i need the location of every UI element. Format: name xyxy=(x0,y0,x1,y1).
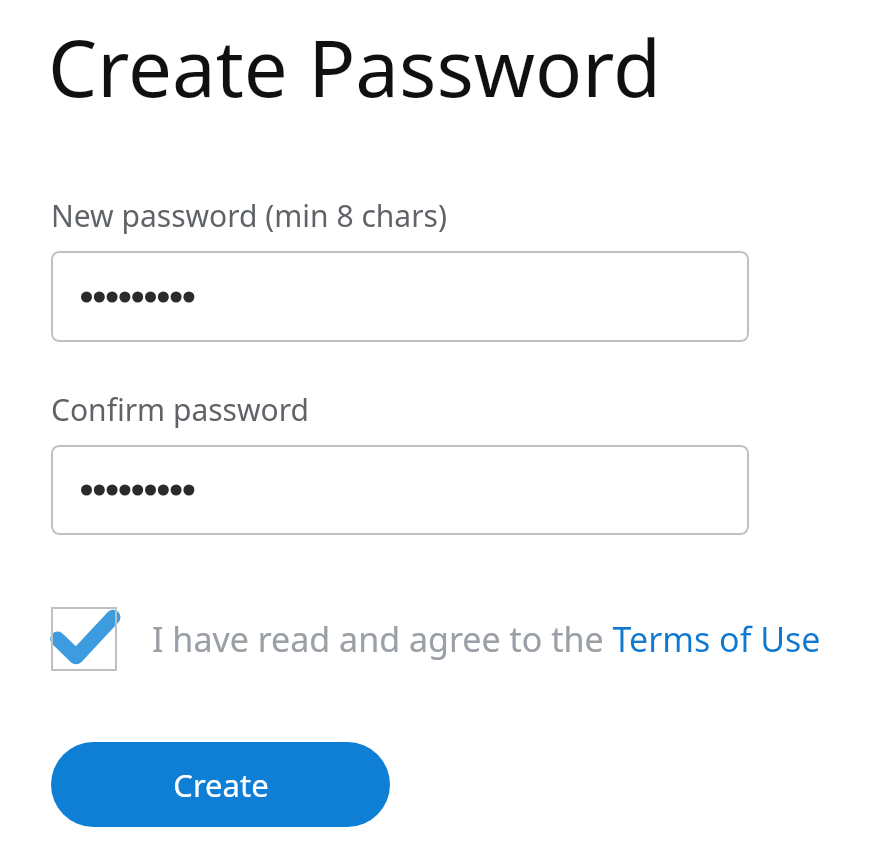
button[interactable]: New password (min 8 chars) xyxy=(51,251,749,342)
staticText: New password (min 8 chars) xyxy=(51,195,447,236)
staticText: Confirm password xyxy=(51,389,309,430)
other: Agree to Terms of Use checkbox xyxy=(51,607,117,671)
staticText: Create Password xyxy=(48,14,661,120)
staticText: I have read and agree to the Terms of Us… xyxy=(152,616,821,662)
staticText: Create xyxy=(173,764,269,806)
button[interactable]: Create xyxy=(51,742,390,827)
button[interactable]: Agree to Terms of Use checkbox xyxy=(51,600,856,678)
button[interactable]: Confirm password xyxy=(51,445,749,535)
